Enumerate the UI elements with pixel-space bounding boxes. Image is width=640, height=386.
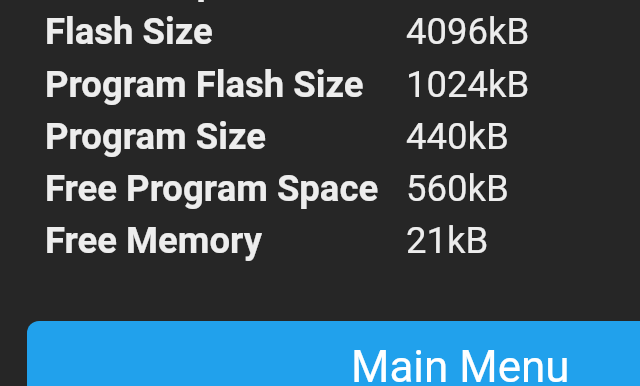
staticText: 440kB (406, 115, 509, 158)
staticText: 4096kB (406, 10, 530, 53)
button[interactable]: Main Menu (27, 321, 640, 386)
staticText: Flash Chip Size (45, 0, 297, 3)
staticText: Main Menu (351, 341, 570, 386)
staticText: Flash Size (45, 10, 213, 53)
button[interactable] (0, 55, 640, 107)
staticText: Program Size (45, 115, 266, 158)
staticText: Free Memory (45, 219, 263, 262)
staticText: Program Flash Size (45, 63, 364, 106)
button[interactable] (0, 211, 640, 263)
staticText: 21kB (406, 219, 489, 262)
staticText: 560kB (406, 167, 509, 210)
button[interactable] (0, 107, 640, 159)
button[interactable] (0, 2, 640, 54)
button[interactable] (0, 159, 640, 211)
staticText: Free Program Space (45, 167, 379, 210)
staticText: 1024kB (406, 63, 530, 106)
